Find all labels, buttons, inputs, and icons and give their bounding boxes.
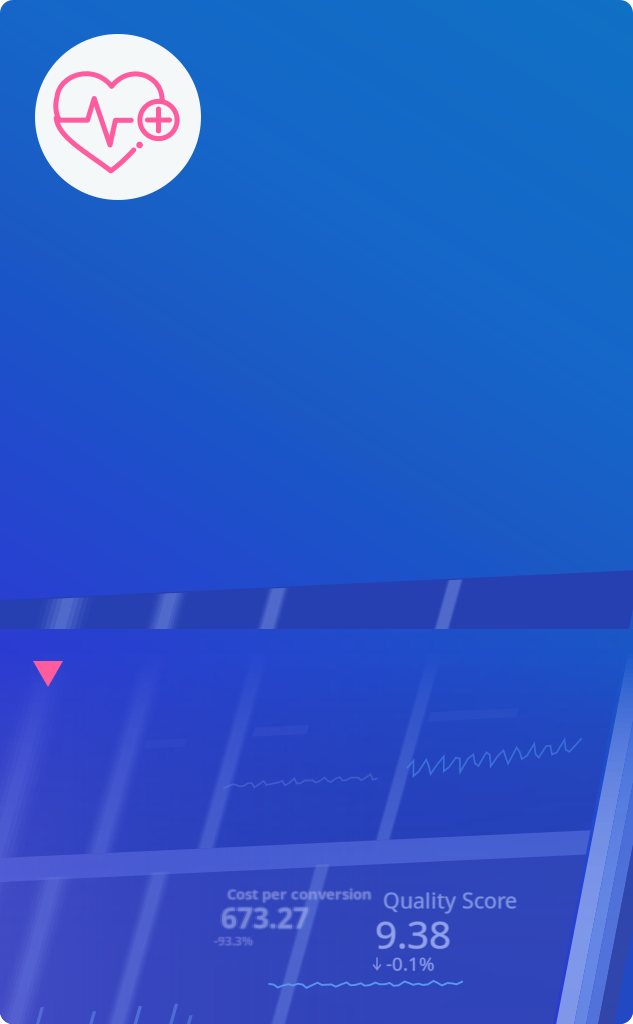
staticText: Cost per conversion: [229, 884, 374, 903]
staticText: -0.1%: [386, 950, 435, 975]
staticText: 9.38: [375, 909, 451, 960]
staticText: 673.27: [219, 899, 307, 936]
staticText: -0.1%: [386, 951, 435, 976]
staticText: 9.38: [374, 908, 450, 959]
staticText: 673.27: [221, 898, 309, 935]
staticText: Cost per conversion: [227, 884, 372, 903]
staticText: Quality Score: [382, 886, 516, 914]
staticText: 9.38: [375, 908, 451, 959]
staticText: Quality Score: [383, 885, 517, 914]
staticText: 9.38: [375, 907, 451, 959]
staticText: Cost per conversion: [227, 885, 372, 904]
staticText: 673.27: [221, 900, 309, 937]
staticText: -93.3%: [212, 933, 251, 949]
staticText: Quality Score: [383, 886, 517, 915]
staticText: -93.3%: [216, 933, 255, 949]
staticText: -93.3%: [214, 933, 253, 949]
staticText: Quality Score: [383, 886, 517, 914]
staticText: -93.3%: [214, 934, 253, 950]
staticText: Cost per conversion: [227, 883, 372, 902]
staticText: Quality Score: [384, 886, 518, 914]
staticText: -0.1%: [385, 951, 434, 976]
staticText: Cost per conversion: [225, 884, 370, 903]
staticText: 673.27: [221, 899, 309, 936]
staticText: -0.1%: [386, 951, 435, 976]
staticText: -0.1%: [387, 951, 436, 976]
staticText: 673.27: [223, 899, 311, 936]
staticText: -93.3%: [214, 932, 253, 948]
staticText: 9.38: [376, 908, 452, 959]
